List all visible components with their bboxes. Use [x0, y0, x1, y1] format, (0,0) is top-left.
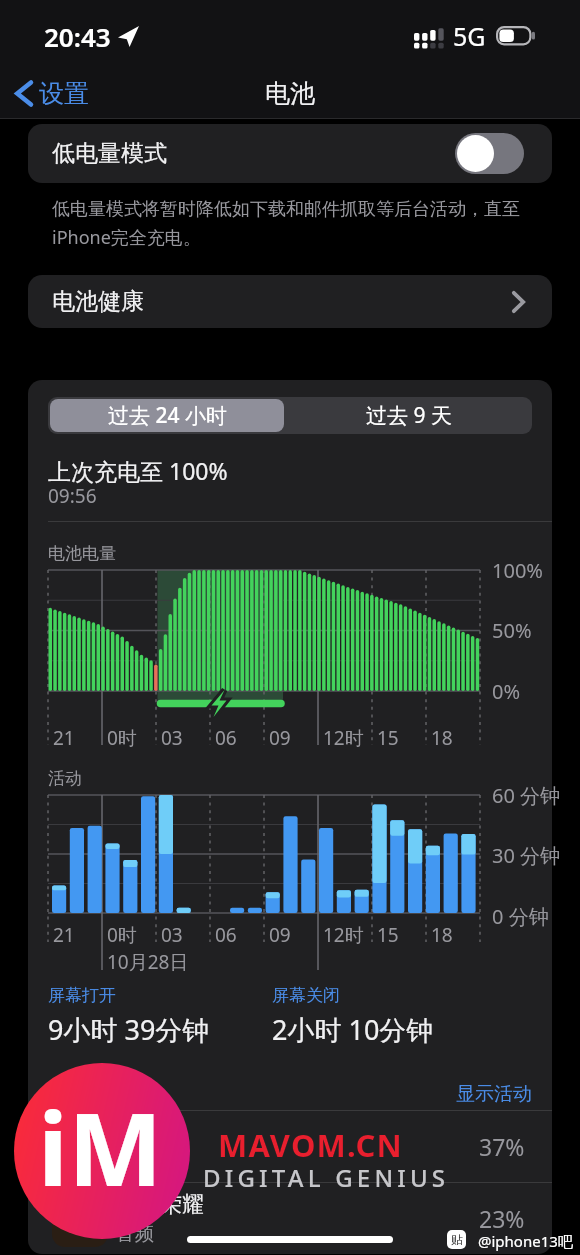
button[interactable]: 低电量模式开关 — [455, 133, 524, 174]
staticText: 音频 — [116, 1150, 154, 1174]
staticText: 电池 — [265, 78, 315, 109]
staticText: 贴 — [451, 1232, 463, 1247]
staticText: 60 分钟 — [492, 782, 561, 809]
button[interactable]: 微信 — [52, 1111, 525, 1182]
button[interactable]: 过去 24 小时 — [50, 399, 284, 432]
button[interactable]: 过去 9 天 — [286, 397, 532, 434]
staticText: 06 — [215, 922, 237, 948]
button[interactable]: 电池健康 — [28, 275, 552, 328]
staticText: 10月28日 — [107, 949, 189, 975]
staticText: 15 — [377, 725, 399, 751]
staticText: 06 — [215, 725, 237, 751]
staticText: 低电量模式将暂时降低如下载和邮件抓取等后台活动，直至 iPhone完全充电。 — [52, 198, 564, 249]
staticText: 电池健康 — [52, 287, 144, 316]
staticText: 12时 — [323, 725, 364, 751]
staticText: 0时 — [107, 922, 137, 948]
staticText: 电池电量 — [48, 543, 116, 564]
staticText: 活动 — [48, 768, 82, 789]
staticText: iM — [38, 1079, 163, 1215]
staticText: 显示活动 — [456, 1082, 532, 1106]
staticText: 屏幕关闭 — [272, 985, 340, 1006]
other: 电池健康详情 — [512, 291, 525, 313]
staticText: 09 — [269, 922, 291, 948]
staticText: DIGITAL GENIUS — [203, 1161, 450, 1194]
staticText: 过去 24 小时 — [108, 401, 227, 430]
button[interactable]: 返回设置 — [15, 78, 89, 109]
staticText: 18 — [431, 922, 453, 948]
staticText: 设置 — [39, 78, 89, 109]
staticText: MAVOM.CN — [218, 1124, 403, 1166]
staticText: 30 分钟 — [492, 842, 561, 869]
staticText: 上次充电至 100% — [48, 455, 228, 486]
staticText: 屏幕打开 — [48, 985, 116, 1006]
staticText: 0% — [492, 678, 521, 705]
staticText: 0时 — [107, 725, 137, 751]
button[interactable]: 智慧荣耀 — [52, 1183, 525, 1254]
staticText: @iphone13吧 — [478, 1231, 573, 1251]
staticText: 2小时 10分钟 — [272, 1011, 434, 1048]
staticText: 9小时 39分钟 — [48, 1011, 210, 1048]
staticText: 09 — [269, 725, 291, 751]
other: 信号 — [414, 23, 444, 49]
staticText: 微信 — [116, 1119, 160, 1147]
staticText: 23% — [479, 1203, 525, 1234]
staticText: 21 — [53, 922, 75, 948]
staticText: 智慧荣耀 — [116, 1191, 204, 1219]
staticText: 37% — [479, 1131, 525, 1162]
staticText: 50% — [492, 617, 532, 644]
other: 返回设置 — [15, 80, 34, 107]
staticText: 低电量模式 — [52, 139, 167, 168]
button[interactable]: 低电量模式 — [28, 124, 552, 183]
staticText: 过去 9 天 — [366, 401, 452, 430]
staticText: 03 — [161, 922, 183, 948]
staticText: 09:56 — [48, 483, 97, 509]
staticText: 18 — [431, 725, 453, 751]
staticText: 音频 — [116, 1222, 154, 1246]
staticText: 12时 — [323, 922, 364, 948]
staticText: 20:43 — [44, 19, 111, 54]
staticText: 15 — [377, 922, 399, 948]
button[interactable]: 显示活动 — [456, 1082, 532, 1106]
other: 电池 — [496, 26, 536, 46]
staticText: 21 — [53, 725, 75, 751]
staticText: 0 分钟 — [492, 903, 549, 930]
staticText: 5G — [453, 19, 486, 53]
staticText: 100% — [492, 557, 543, 584]
staticText: 03 — [161, 725, 183, 751]
